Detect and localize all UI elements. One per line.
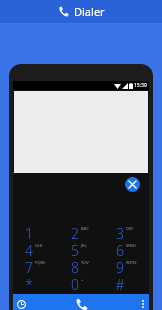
- staticText: 6: [116, 241, 124, 258]
- button[interactable]: 6: [104, 241, 149, 258]
- button[interactable]: 1: [13, 224, 59, 241]
- button[interactable]: More options: [104, 294, 149, 310]
- button[interactable]: 5: [59, 241, 104, 258]
- staticText: +: [81, 277, 84, 282]
- staticText: PQRS: [35, 260, 46, 265]
- button[interactable]: 0: [59, 275, 104, 292]
- button[interactable]: Delete: [125, 177, 140, 192]
- staticText: DEF: [126, 226, 134, 231]
- button[interactable]: 8: [59, 258, 104, 275]
- staticText: *: [25, 275, 33, 292]
- staticText: JKL: [81, 243, 87, 248]
- button[interactable]: 7: [13, 258, 59, 275]
- staticText: MNO: [126, 243, 136, 248]
- staticText: 1: [25, 224, 33, 241]
- staticText: TUV: [81, 260, 89, 265]
- button[interactable]: Call: [59, 294, 104, 310]
- staticText: 8: [71, 258, 79, 275]
- button[interactable]: #: [104, 275, 149, 292]
- button[interactable]: 2: [59, 224, 104, 241]
- staticText: 0: [71, 275, 79, 292]
- staticText: 2: [71, 224, 79, 241]
- staticText: 9: [116, 258, 124, 275]
- button[interactable]: 4: [13, 241, 59, 258]
- staticText: 4: [25, 241, 33, 258]
- staticText: WXYZ: [126, 260, 137, 265]
- staticText: GHI: [35, 243, 43, 248]
- staticText: ABC: [81, 226, 89, 231]
- staticText: 15:39: [134, 82, 147, 89]
- button[interactable]: *: [13, 275, 59, 292]
- staticText: 3: [116, 224, 124, 241]
- button[interactable]: 9: [104, 258, 149, 275]
- button[interactable]: Recents: [13, 294, 59, 310]
- staticText: 5: [71, 241, 79, 258]
- staticText: #: [115, 275, 125, 292]
- button[interactable]: 3: [104, 224, 149, 241]
- staticText: 7: [25, 258, 33, 275]
- staticText: Dialer: [74, 4, 105, 19]
